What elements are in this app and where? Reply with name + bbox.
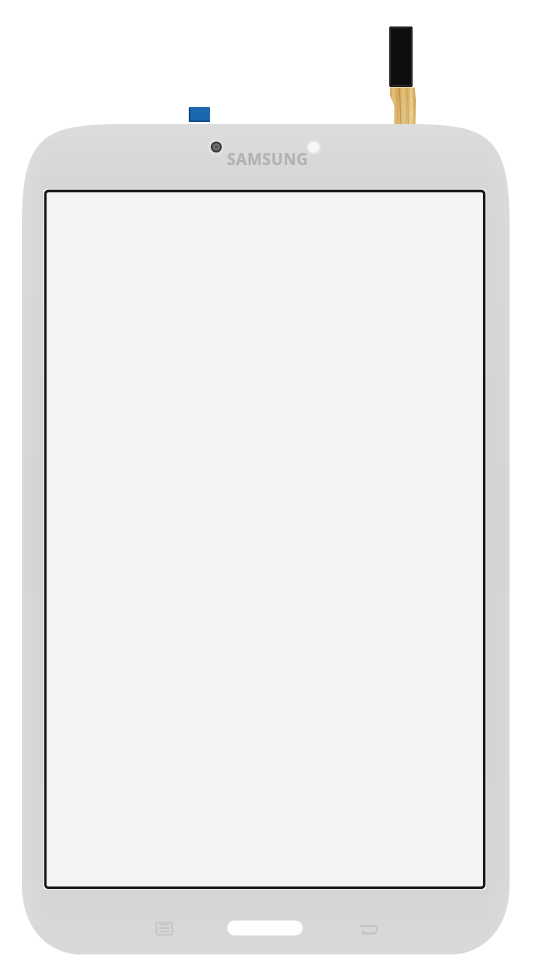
staticText: SAMSUNG — [227, 148, 309, 169]
button[interactable]: Home — [222, 911, 310, 945]
button[interactable]: Back — [350, 911, 390, 945]
button[interactable]: Recent apps — [145, 911, 185, 945]
